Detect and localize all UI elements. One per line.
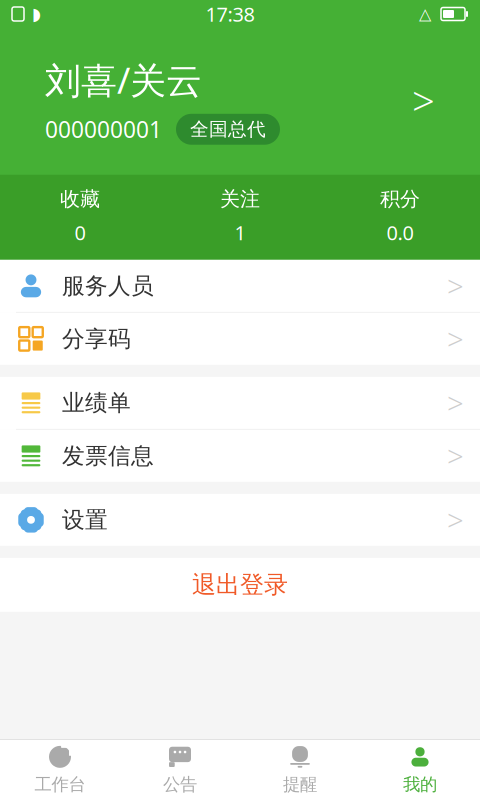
button[interactable]: 发票信息 xyxy=(0,430,480,482)
staticText: 服务人员 xyxy=(62,272,154,300)
button[interactable]: 业绩单 xyxy=(0,377,480,430)
staticText: > xyxy=(447,383,464,422)
staticText: 退出登录 xyxy=(192,570,288,600)
staticText: 设置 xyxy=(62,506,108,534)
staticText: 工作台 xyxy=(34,774,85,795)
staticText: > xyxy=(447,266,464,305)
staticText: > xyxy=(447,500,464,539)
button[interactable]: 退出登录 xyxy=(0,558,480,612)
staticText: 发票信息 xyxy=(62,442,154,470)
staticText: 1 xyxy=(234,219,245,246)
staticText: 全国总代 xyxy=(190,118,266,141)
staticText: 收藏 xyxy=(60,187,100,211)
staticText: > xyxy=(412,74,435,127)
staticText: 17:38 xyxy=(205,1,254,27)
staticText: 刘喜/关云 xyxy=(45,56,202,104)
button[interactable]: 刘喜/关云 xyxy=(0,28,480,175)
staticText: ◗ xyxy=(32,4,41,24)
staticText: 业绩单 xyxy=(62,389,131,417)
button[interactable]: 我的 xyxy=(360,740,480,800)
button[interactable]: 服务人员 xyxy=(0,260,480,313)
button[interactable]: 设置 xyxy=(0,494,480,546)
button[interactable]: 公告 xyxy=(120,740,240,800)
button[interactable]: 提醒 xyxy=(240,740,360,800)
staticText: 积分 xyxy=(380,187,420,211)
staticText: 000000001 xyxy=(45,114,162,144)
staticText: 关注 xyxy=(220,187,260,211)
button[interactable]: 收藏 xyxy=(0,187,160,246)
button[interactable]: 关注 xyxy=(160,187,320,246)
staticText: 公告 xyxy=(163,774,197,795)
staticText: 分享码 xyxy=(62,325,131,353)
button[interactable]: 积分 xyxy=(320,187,480,246)
staticText: 提醒 xyxy=(283,774,317,795)
staticText: > xyxy=(447,436,464,475)
staticText: △ xyxy=(419,5,431,23)
staticText: 我的 xyxy=(403,774,437,795)
staticText: 0.0 xyxy=(386,219,413,246)
button[interactable]: 分享码 xyxy=(0,313,480,365)
staticText: > xyxy=(447,319,464,358)
button[interactable]: 工作台 xyxy=(0,740,120,800)
staticText: 0 xyxy=(74,219,85,246)
